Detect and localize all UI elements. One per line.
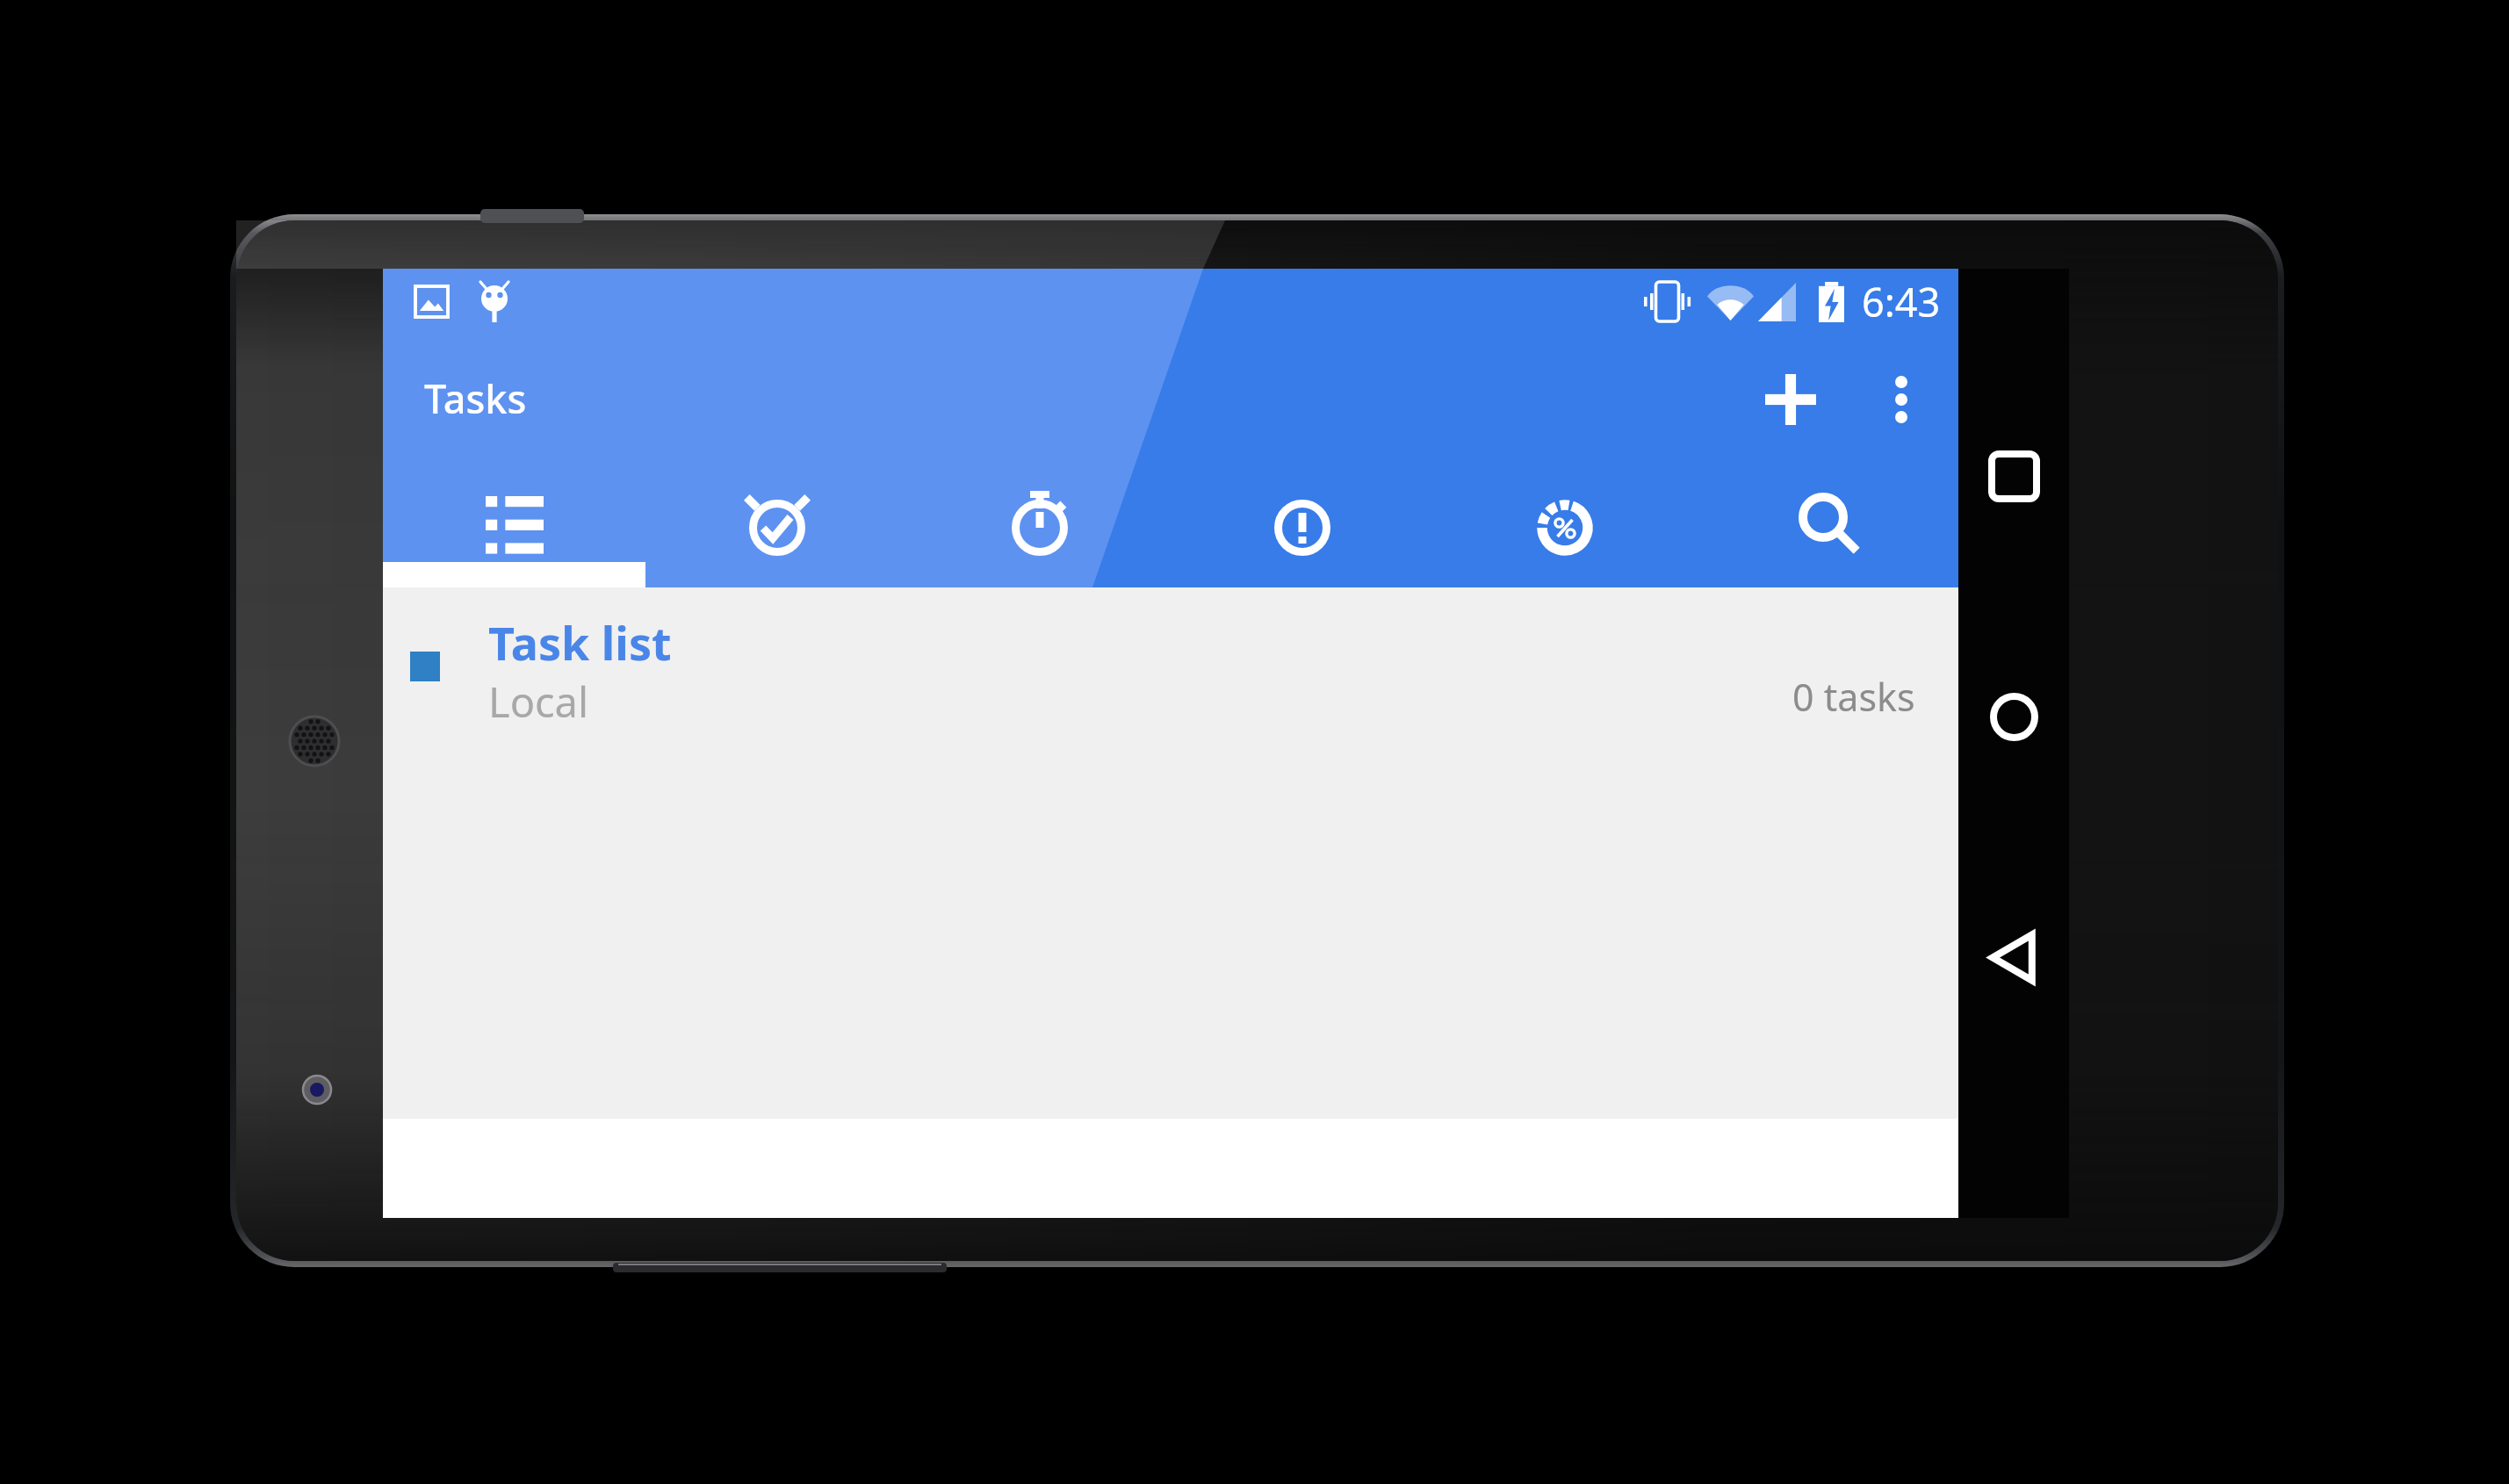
staticText: Task list xyxy=(488,611,672,674)
button[interactable]: Add task xyxy=(1729,338,1852,461)
button[interactable]: Timers xyxy=(908,461,1171,587)
staticText: 0 tasks xyxy=(1792,671,1915,723)
button[interactable]: Recents xyxy=(1958,421,2069,530)
button[interactable]: Home xyxy=(1958,662,2069,771)
button[interactable]: More options xyxy=(1842,338,1960,461)
button[interactable]: Priority xyxy=(1171,461,1433,587)
staticText: Tasks xyxy=(424,371,527,425)
button[interactable]: Search xyxy=(1696,461,1958,587)
button[interactable]: Progress xyxy=(1433,461,1696,587)
staticText: 6:43 xyxy=(1862,275,1941,328)
button[interactable]: Task lists xyxy=(383,461,645,587)
staticText: Local xyxy=(488,674,589,730)
button[interactable]: Task list xyxy=(383,587,1958,754)
button[interactable]: Back xyxy=(1958,903,2069,1012)
button[interactable]: Reminders xyxy=(645,461,908,587)
